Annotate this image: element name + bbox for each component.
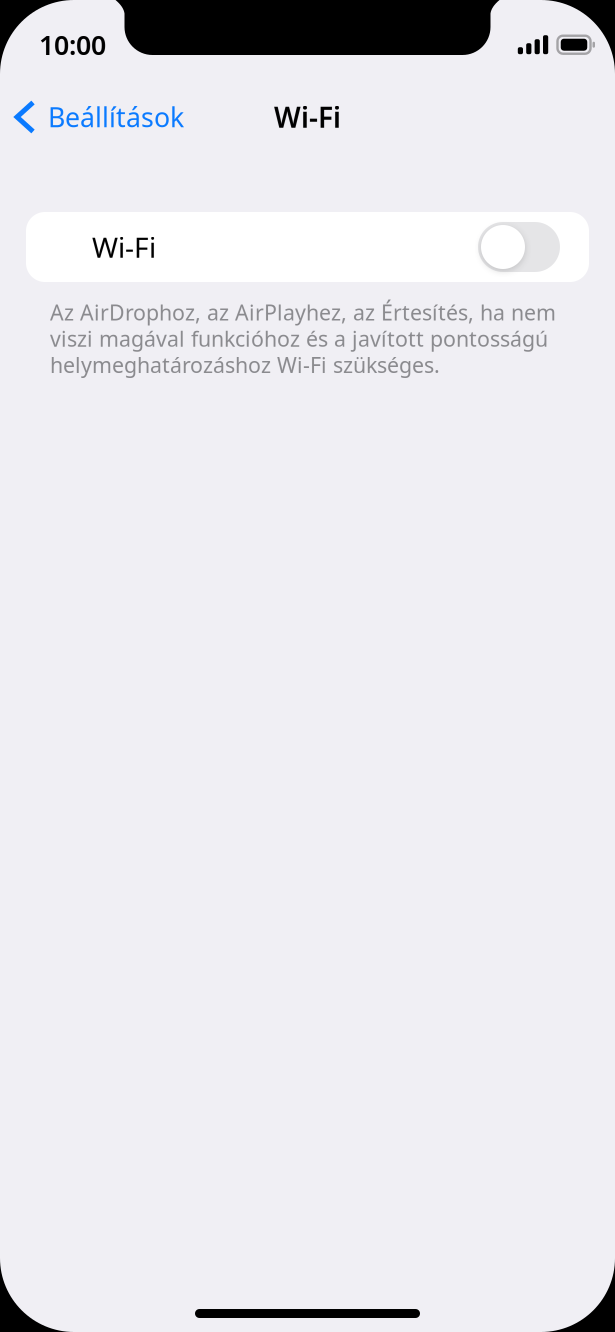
staticText: Beállítások bbox=[48, 99, 184, 135]
staticText: Wi‑Fi bbox=[274, 98, 341, 136]
button[interactable]: Wi‑Fi bbox=[26, 212, 589, 282]
staticText: Wi‑Fi bbox=[92, 228, 156, 266]
staticText: Az AirDrophoz, az AirPlayhez, az Értesít… bbox=[50, 298, 556, 379]
staticText: 10:00 bbox=[39, 27, 106, 62]
button[interactable]: Beállítások bbox=[0, 91, 184, 143]
